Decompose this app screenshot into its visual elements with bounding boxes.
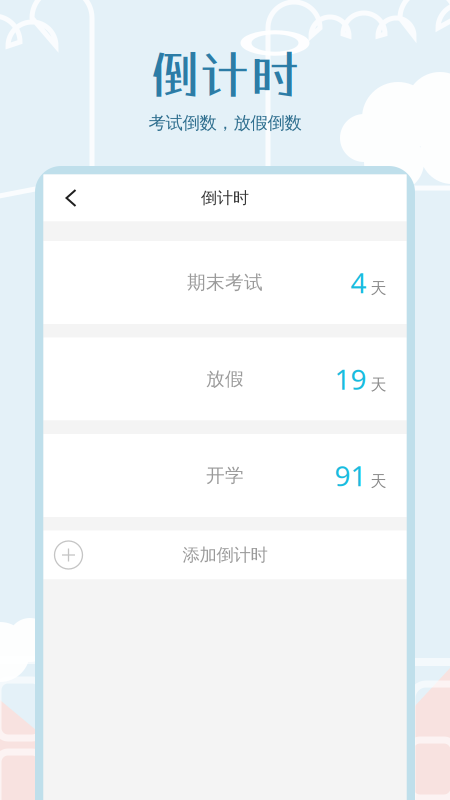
staticText: 添加倒计时: [182, 544, 267, 566]
staticText: 19: [334, 360, 366, 398]
staticText: 天: [370, 375, 386, 395]
staticText: 天: [370, 278, 386, 298]
staticText: 开学: [206, 464, 244, 487]
button[interactable]: 放假: [43, 337, 406, 420]
button[interactable]: 开学: [43, 434, 406, 517]
staticText: 期末考试: [187, 271, 263, 294]
staticText: 放假: [206, 367, 244, 390]
button[interactable]: 添加倒计时: [43, 530, 406, 579]
staticText: 考试倒数，放假倒数: [148, 112, 301, 134]
button[interactable]: Back: [54, 181, 88, 215]
staticText: 4: [350, 264, 366, 301]
staticText: 倒计时: [201, 188, 249, 208]
staticText: 91: [334, 457, 366, 494]
button[interactable]: 期末考试: [43, 241, 406, 324]
staticText: 天: [370, 471, 386, 491]
staticText: 倒计时: [148, 44, 301, 104]
